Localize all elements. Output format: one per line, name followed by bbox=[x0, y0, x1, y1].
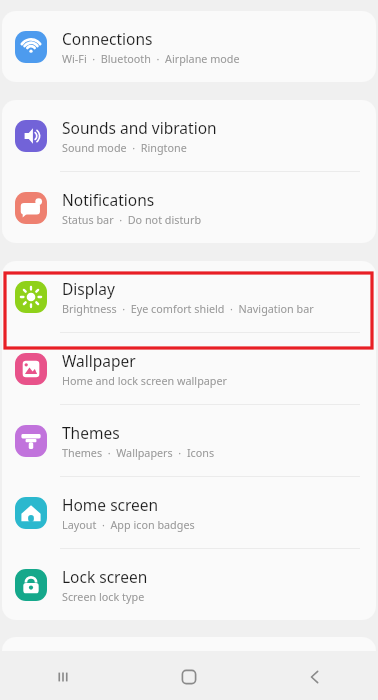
button[interactable]: Connections bbox=[2, 11, 376, 82]
staticText: Brightness · Eye comfort shield · Naviga… bbox=[62, 301, 314, 316]
button[interactable]: Home screen bbox=[2, 477, 376, 549]
staticText: Sound mode · Ringtone bbox=[62, 140, 187, 155]
button[interactable]: Lock screen bbox=[2, 549, 376, 620]
button[interactable]: Back bbox=[252, 654, 378, 700]
staticText: Wallpaper bbox=[62, 350, 136, 371]
button[interactable]: Wallpaper bbox=[2, 333, 376, 405]
staticText: Wi-Fi · Bluetooth · Airplane mode bbox=[62, 51, 240, 66]
button[interactable]: Recents bbox=[0, 654, 126, 700]
staticText: Layout · App icon badges bbox=[62, 517, 195, 532]
button[interactable]: Themes bbox=[2, 405, 376, 477]
staticText: Lock screen bbox=[62, 566, 148, 587]
button[interactable]: Home bbox=[126, 654, 252, 700]
staticText: Home screen bbox=[62, 494, 159, 515]
staticText: Home and lock screen wallpaper bbox=[62, 373, 228, 388]
button[interactable]: Sounds and vibration bbox=[2, 100, 376, 172]
staticText: Sounds and vibration bbox=[62, 117, 217, 138]
staticText: Themes bbox=[62, 422, 120, 443]
staticText: Screen lock type bbox=[62, 589, 145, 604]
staticText: Themes · Wallpapers · Icons bbox=[62, 445, 215, 460]
button[interactable]: Notifications bbox=[2, 172, 376, 243]
button[interactable]: Display bbox=[2, 261, 376, 333]
staticText: Status bar · Do not disturb bbox=[62, 212, 202, 227]
staticText: Notifications bbox=[62, 189, 155, 210]
staticText: Connections bbox=[62, 28, 153, 49]
staticText: Display bbox=[62, 278, 115, 299]
